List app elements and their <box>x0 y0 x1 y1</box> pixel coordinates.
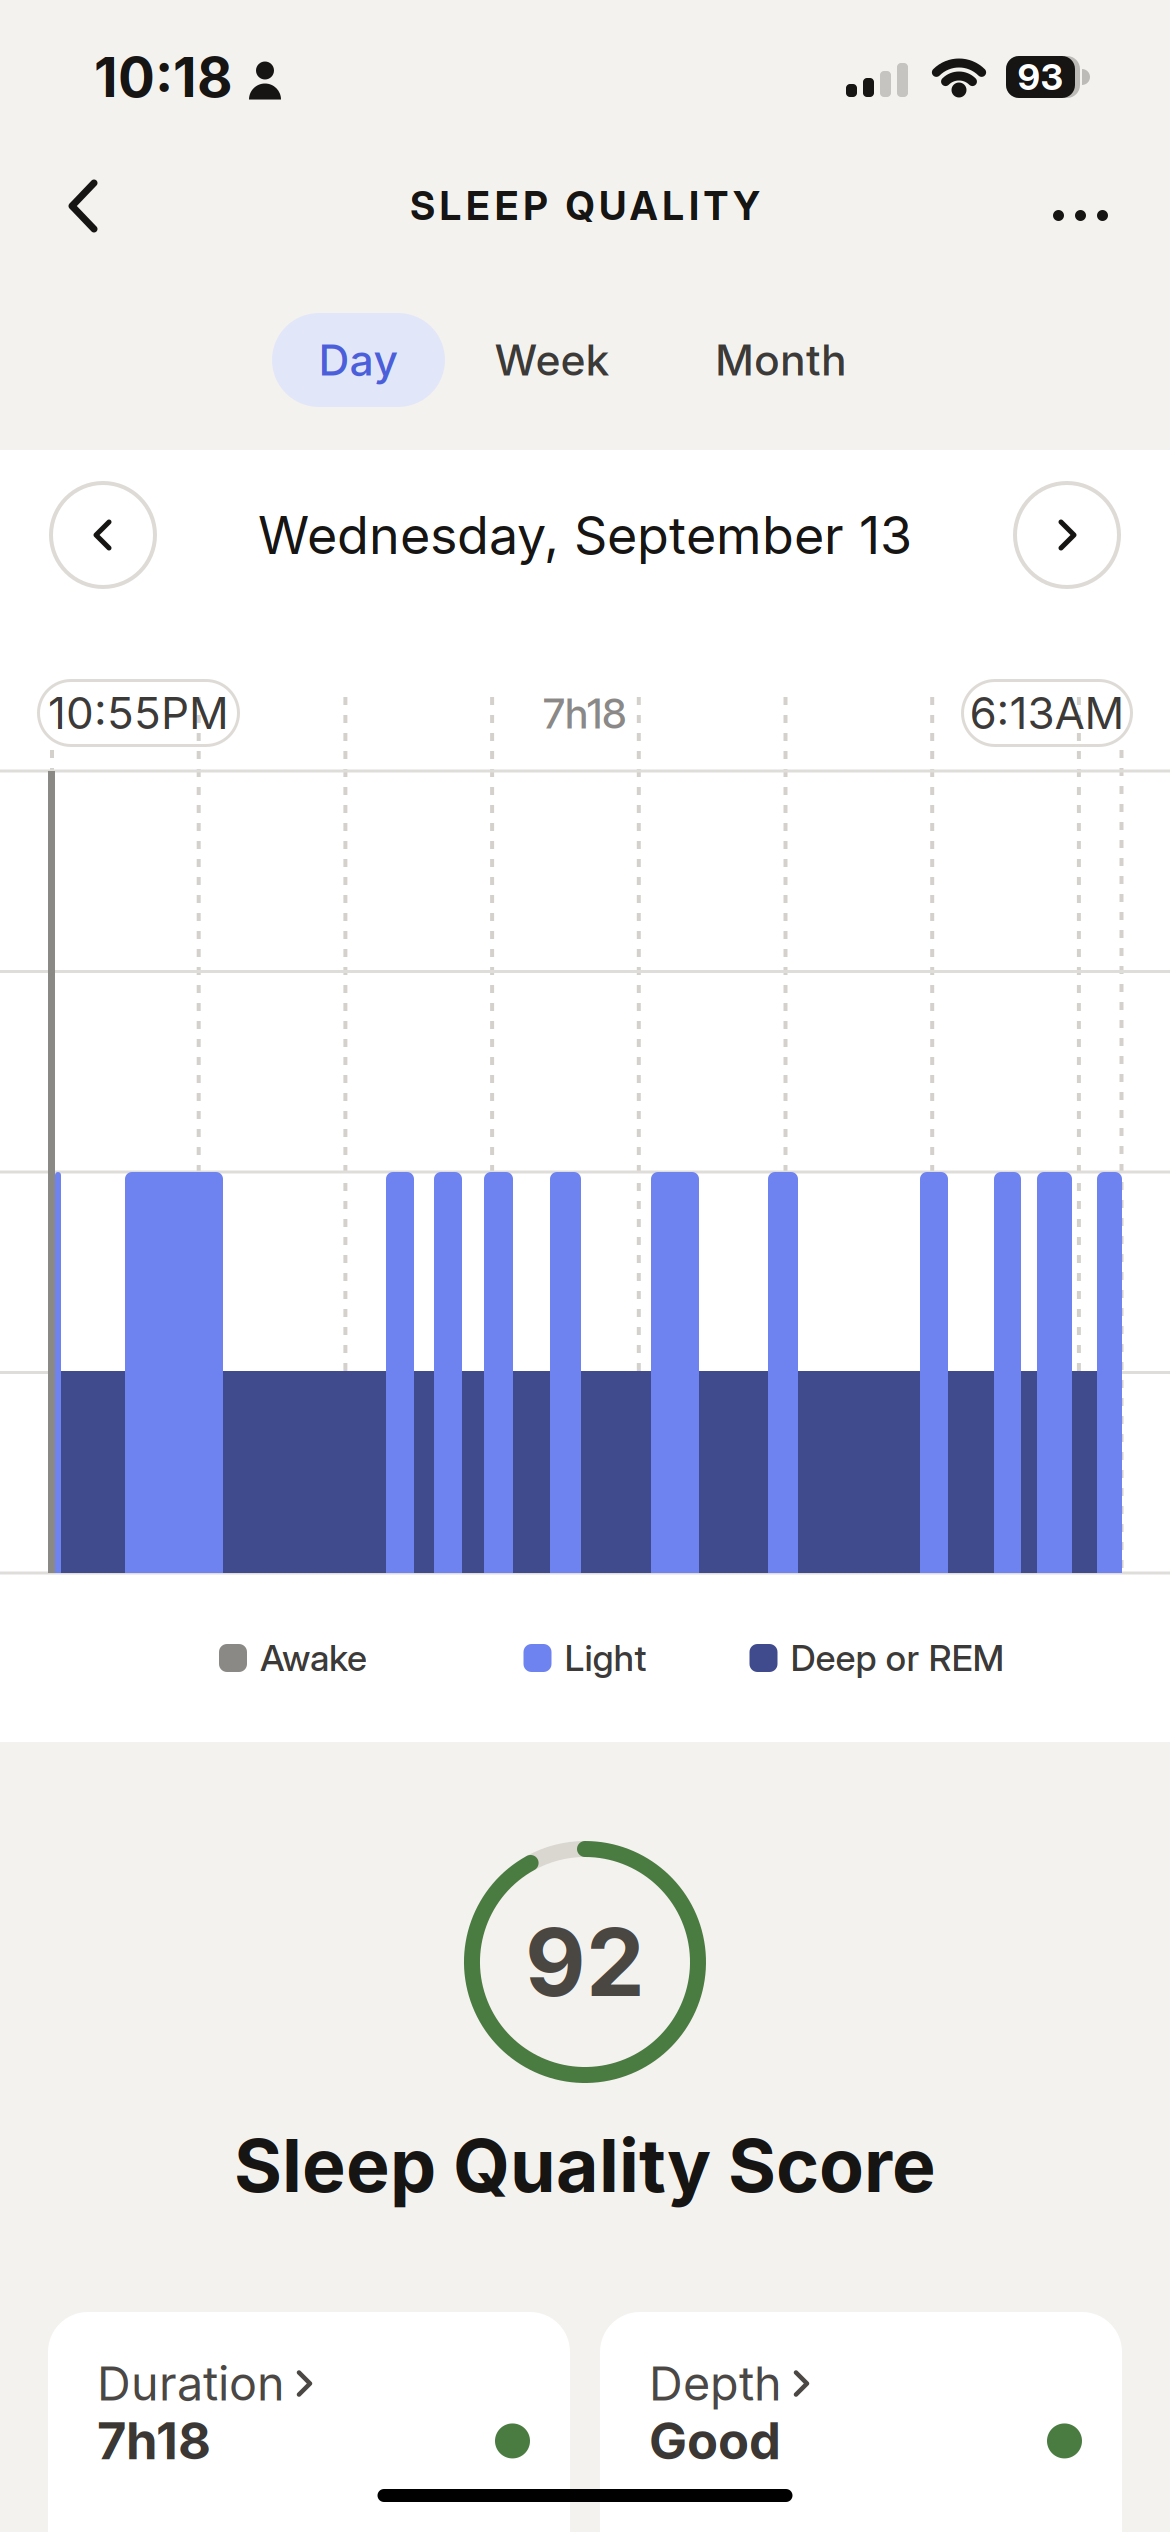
staticText: Wednesday, September 13 <box>258 504 912 566</box>
staticText: 92 <box>525 1907 645 2017</box>
button[interactable]: Week <box>445 313 659 407</box>
button[interactable]: Day <box>272 313 445 407</box>
staticText: 7h18 <box>543 689 627 738</box>
button[interactable]: Previous day <box>49 481 157 589</box>
button[interactable]: Depth <box>600 2312 1122 2532</box>
button[interactable]: Next day <box>1013 481 1121 589</box>
staticText: 6:13AM <box>969 687 1124 739</box>
staticText: Good <box>649 2411 781 2471</box>
staticText: Duration <box>97 2356 285 2411</box>
staticText: Depth <box>649 2356 782 2411</box>
button[interactable]: Back <box>0 172 100 231</box>
button[interactable]: Month <box>659 313 903 407</box>
staticText: Deep or REM <box>790 1637 1004 1679</box>
staticText: Sleep Quality Score <box>234 2122 936 2208</box>
staticText: 10:18 <box>94 45 233 109</box>
staticText: Month <box>715 335 847 385</box>
staticText: 93 <box>1017 56 1063 98</box>
staticText: 10:55PM <box>48 687 229 739</box>
staticText: SLEEP QUALITY <box>410 183 760 229</box>
staticText: Awake <box>260 1637 367 1679</box>
button[interactable]: More <box>1053 182 1170 221</box>
button[interactable]: Duration <box>48 2312 570 2532</box>
staticText: Day <box>318 335 398 385</box>
staticText: 7h18 <box>97 2411 211 2471</box>
staticText: Week <box>494 335 609 385</box>
staticText: Light <box>564 1637 646 1679</box>
